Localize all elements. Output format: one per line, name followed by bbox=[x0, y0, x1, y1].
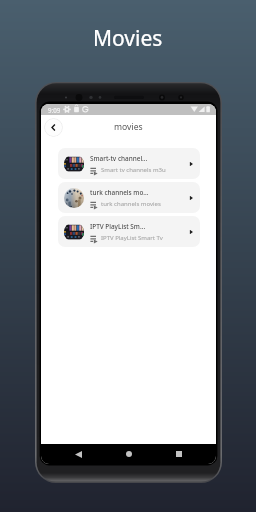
staticText: IPTV PlayList Smart Tv bbox=[101, 234, 163, 242]
button[interactable]: IPTV PlayList Sm... bbox=[58, 216, 200, 247]
staticText: movies bbox=[114, 121, 143, 133]
button[interactable]: Open playlist bbox=[185, 158, 197, 170]
staticText: Smart-tv channel... bbox=[90, 154, 148, 163]
button[interactable]: Home bbox=[122, 447, 136, 461]
button[interactable]: Back bbox=[44, 118, 63, 137]
button[interactable]: turk channels mo... bbox=[58, 182, 200, 213]
staticText: 9:09 bbox=[48, 106, 61, 114]
staticText: turk channels movies bbox=[101, 200, 161, 208]
staticText: IPTV PlayList Sm... bbox=[90, 222, 146, 231]
staticText: Smart tv channels m3u bbox=[101, 166, 166, 174]
button[interactable]: Back bbox=[71, 447, 85, 461]
staticText: Movies bbox=[93, 24, 163, 53]
button[interactable]: Recent apps bbox=[172, 447, 186, 461]
button[interactable]: Open playlist bbox=[185, 192, 197, 204]
staticText: turk channels mo... bbox=[90, 188, 149, 197]
button[interactable]: Smart-tv channel... bbox=[58, 148, 200, 179]
button[interactable]: Open playlist bbox=[185, 226, 197, 238]
